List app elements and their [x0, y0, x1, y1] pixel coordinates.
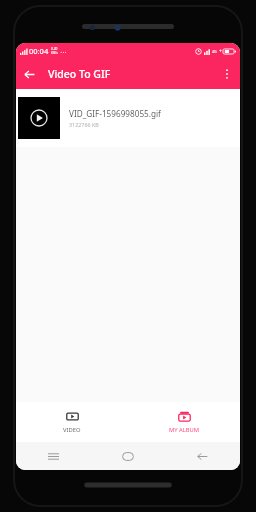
staticText: 00:04: [29, 46, 49, 56]
staticText: VID_GIF-1596998055.gif: [69, 108, 161, 119]
button[interactable]: Home: [90, 442, 165, 470]
button[interactable]: Recent apps: [16, 442, 90, 470]
staticText: +: [219, 48, 222, 55]
staticText: ⋯: [60, 48, 66, 55]
button[interactable]: Back: [165, 442, 240, 470]
staticText: KB/s: [51, 51, 58, 55]
button[interactable]: VIDEO: [16, 402, 128, 442]
button[interactable]: VID_GIF-1596998055.gif: [16, 89, 240, 147]
button[interactable]: Back: [16, 61, 42, 87]
staticText: MY ALBUM: [169, 426, 200, 434]
button[interactable]: MY ALBUM: [128, 402, 240, 442]
staticText: Video To GIF: [48, 67, 111, 81]
button[interactable]: More options: [214, 61, 240, 87]
staticText: 3122766 KB: [69, 121, 99, 128]
staticText: 0.20: [51, 47, 58, 51]
staticText: VIDEO: [63, 426, 81, 434]
staticText: 4G: [212, 49, 217, 54]
